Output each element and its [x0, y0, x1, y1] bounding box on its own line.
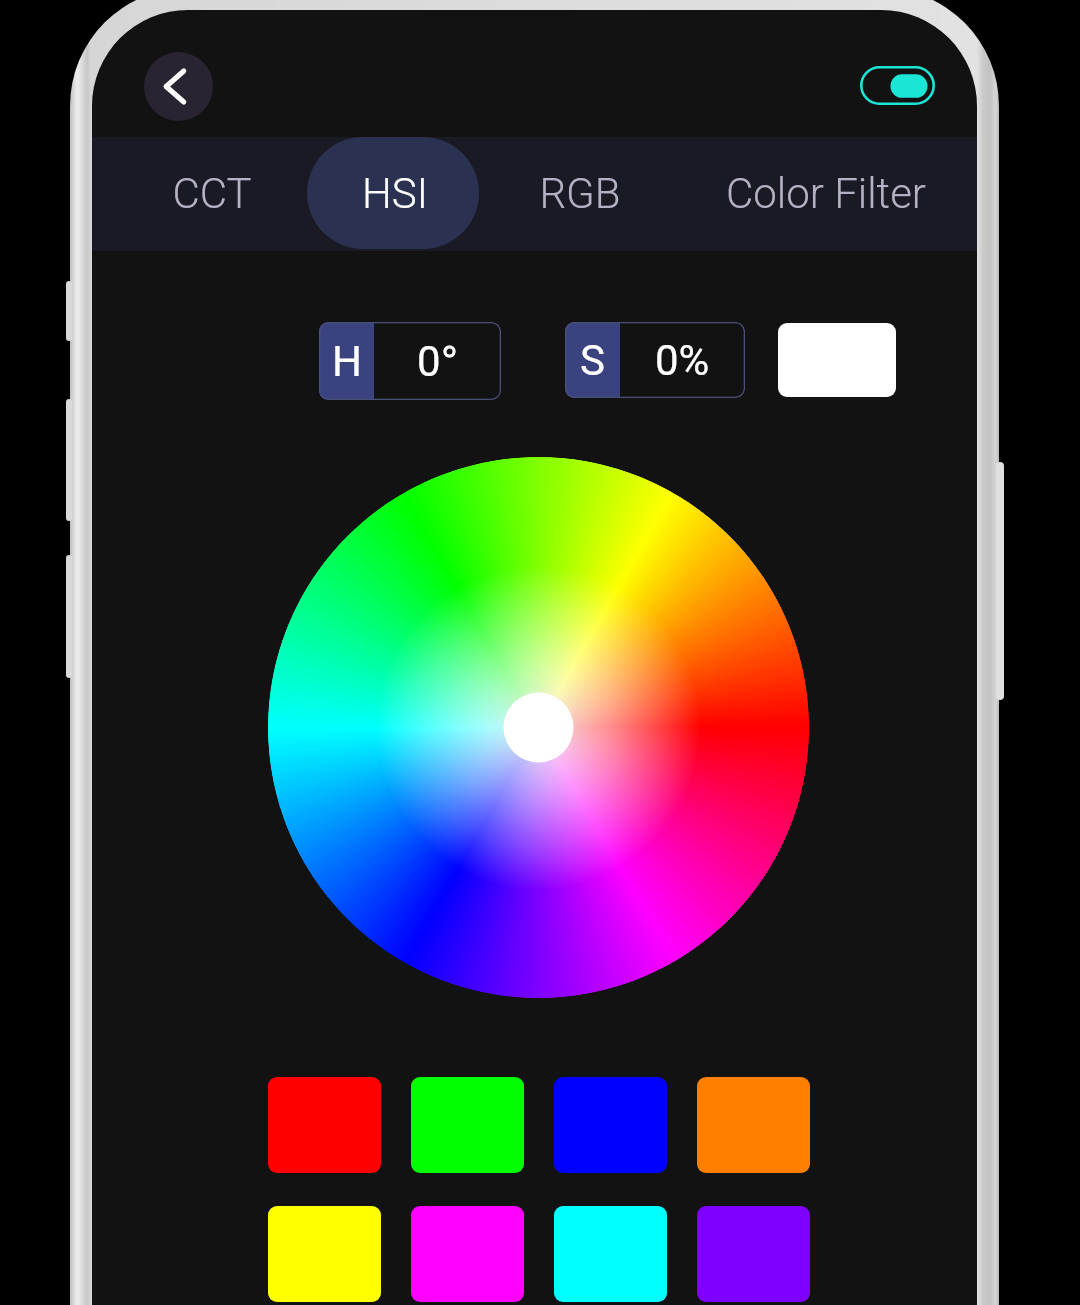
button[interactable]: Preset colour 6 — [411, 1206, 524, 1302]
button[interactable]: Preset colour 4 — [697, 1077, 810, 1173]
staticText: HSI — [362, 169, 428, 218]
button[interactable]: Color Filter — [700, 137, 977, 251]
button[interactable]: Preset colour 2 — [411, 1077, 524, 1173]
button[interactable]: Back — [144, 52, 213, 121]
staticText: 0% — [655, 336, 710, 385]
staticText: CCT — [172, 169, 252, 218]
button[interactable]: HSI — [307, 137, 479, 251]
button[interactable]: H — [319, 322, 501, 400]
staticText: S — [580, 336, 605, 385]
staticText: Color Filter — [726, 169, 926, 218]
staticText: RGB — [539, 169, 621, 218]
button[interactable]: CCT — [92, 137, 303, 251]
button[interactable]: Preset colour 7 — [554, 1206, 667, 1302]
button[interactable]: Preset colour 5 — [268, 1206, 381, 1302]
button[interactable]: Preset colour 3 — [554, 1077, 667, 1173]
button[interactable]: Current colour — [778, 323, 896, 397]
button[interactable]: Colour wheel — [268, 457, 809, 998]
button[interactable]: RGB — [487, 137, 700, 251]
button[interactable]: Preset colour 8 — [697, 1206, 810, 1302]
staticText: 0 — [417, 337, 441, 386]
button[interactable]: S — [565, 322, 745, 398]
button[interactable]: Preset colour 1 — [268, 1077, 381, 1173]
button[interactable]: Power toggle — [860, 66, 935, 105]
staticText: H — [332, 337, 362, 386]
